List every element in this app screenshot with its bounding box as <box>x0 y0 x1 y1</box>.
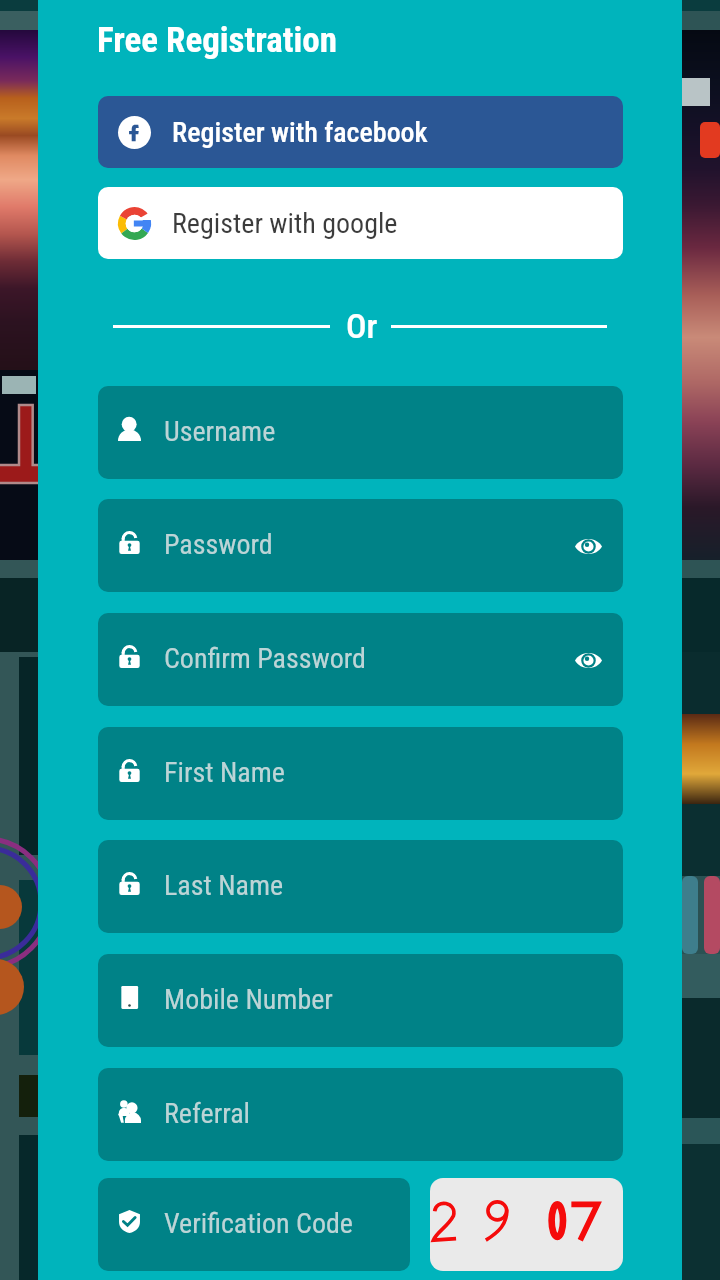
button[interactable]: Mobile Number <box>98 954 623 1047</box>
staticText: Verification Code <box>164 1207 353 1240</box>
button[interactable]: Show password <box>559 517 617 575</box>
staticText: Free Registration <box>97 20 337 61</box>
button[interactable]: Verification Code <box>98 1178 410 1271</box>
button[interactable]: Referral <box>98 1068 623 1161</box>
staticText: Register with facebook <box>172 116 428 149</box>
button[interactable]: Register with facebook <box>98 96 623 168</box>
staticText: Mobile Number <box>164 983 333 1016</box>
staticText: Or <box>346 306 378 346</box>
staticText: Username <box>164 415 276 448</box>
button[interactable]: Password <box>98 499 623 592</box>
staticText: Register with google <box>172 207 398 240</box>
button[interactable]: Show password <box>559 631 617 689</box>
button[interactable]: First Name <box>98 727 623 820</box>
button[interactable]: Captcha code <box>430 1178 623 1271</box>
button[interactable]: Username <box>98 386 623 479</box>
staticText: Referral <box>164 1097 250 1130</box>
staticText: Last Name <box>164 869 284 902</box>
staticText: First Name <box>164 756 285 789</box>
button[interactable]: Last Name <box>98 840 623 933</box>
staticText: Password <box>164 528 273 561</box>
staticText: Confirm Password <box>164 642 366 675</box>
button[interactable]: Register with google <box>98 187 623 259</box>
button[interactable]: Confirm Password <box>98 613 623 706</box>
